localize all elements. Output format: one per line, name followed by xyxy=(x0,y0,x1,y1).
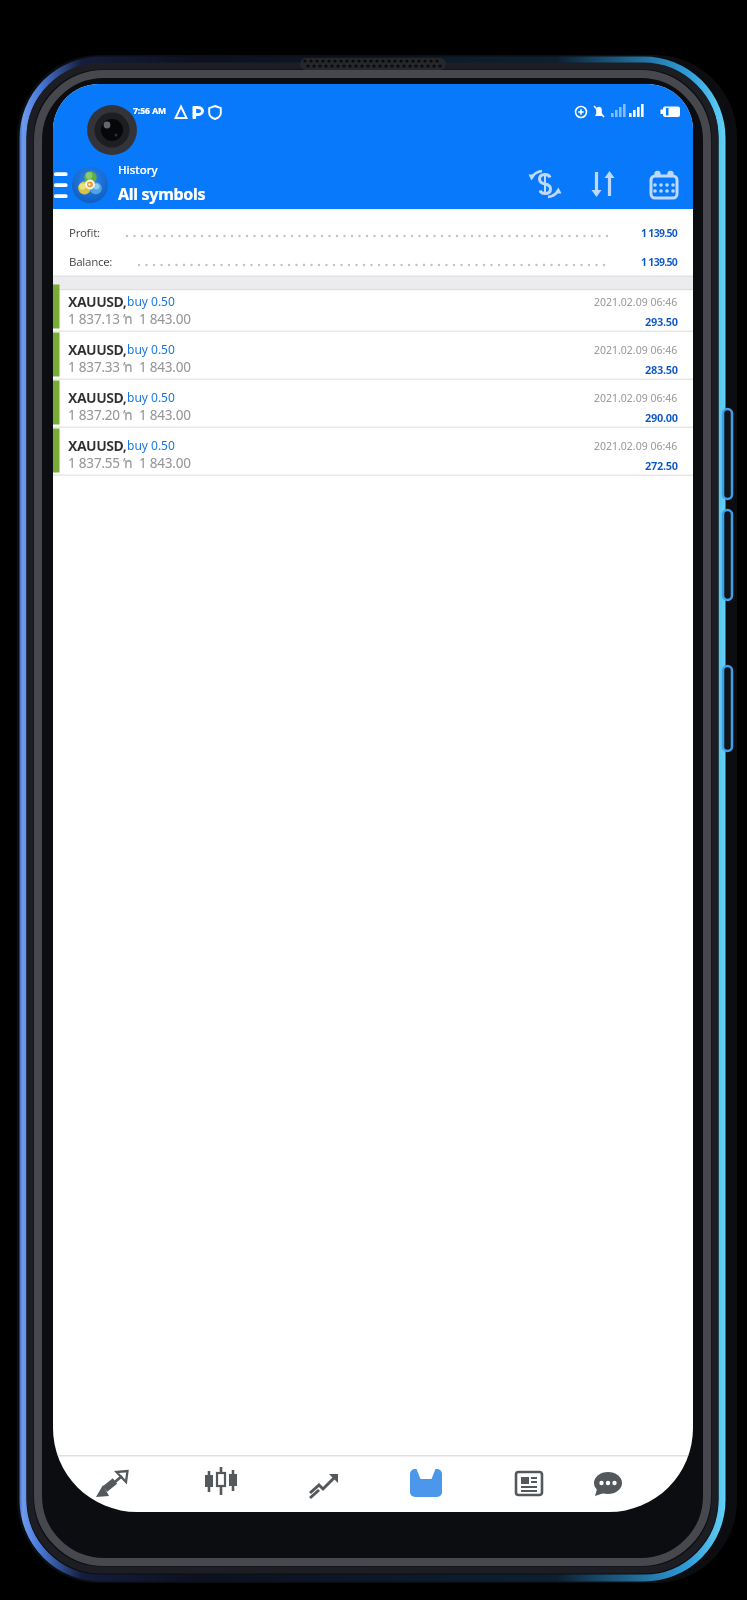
button[interactable] xyxy=(394,1456,458,1512)
button[interactable] xyxy=(292,1456,356,1512)
button[interactable] xyxy=(189,1456,253,1512)
staticText: buy 0.50 xyxy=(127,437,175,453)
button[interactable] xyxy=(576,1456,640,1512)
staticText: All symbols xyxy=(118,183,206,205)
staticText: buy 0.50 xyxy=(127,341,175,357)
staticText: buy 0.50 xyxy=(127,293,175,309)
staticText: buy 0.50 xyxy=(127,389,175,405)
staticText: 272.50 xyxy=(645,458,678,473)
staticText: 1 837.33 ŉ 1 843.00 xyxy=(68,358,191,376)
staticText: 2021.02.09 06:46 xyxy=(594,295,678,309)
staticText: XAUUSD, xyxy=(68,340,127,359)
staticText: Balance: xyxy=(69,254,113,270)
staticText: 1 139.50 xyxy=(641,255,678,269)
staticText: 2021.02.09 06:46 xyxy=(594,343,678,357)
staticText: 293.50 xyxy=(645,314,678,329)
staticText: XAUUSD, xyxy=(68,436,127,455)
button[interactable] xyxy=(53,166,81,206)
button[interactable] xyxy=(579,160,627,208)
staticText: 290.00 xyxy=(645,410,678,425)
staticText: XAUUSD, xyxy=(68,388,127,407)
button[interactable]: XAUUSD, xyxy=(53,332,693,380)
staticText: Profit: xyxy=(69,225,100,241)
staticText: 7:56 AM xyxy=(133,105,167,117)
staticText: History xyxy=(118,162,158,178)
staticText: 283.50 xyxy=(645,362,678,377)
staticText: 2021.02.09 06:46 xyxy=(594,439,678,453)
button[interactable] xyxy=(497,1456,561,1512)
staticText: 1 139.50 xyxy=(641,226,678,240)
staticText: 1 837.13 ŉ 1 843.00 xyxy=(68,310,191,328)
button[interactable]: XAUUSD, xyxy=(53,428,693,476)
button[interactable] xyxy=(640,160,688,208)
button[interactable] xyxy=(521,160,569,208)
staticText: 1 837.55 ŉ 1 843.00 xyxy=(68,454,191,472)
button[interactable]: XAUUSD, xyxy=(53,380,693,428)
button[interactable]: XAUUSD, xyxy=(53,284,693,332)
staticText: 1 837.20 ŉ 1 843.00 xyxy=(68,406,191,424)
staticText: 2021.02.09 06:46 xyxy=(594,391,678,405)
staticText: XAUUSD, xyxy=(68,292,127,311)
button[interactable] xyxy=(81,1456,145,1512)
